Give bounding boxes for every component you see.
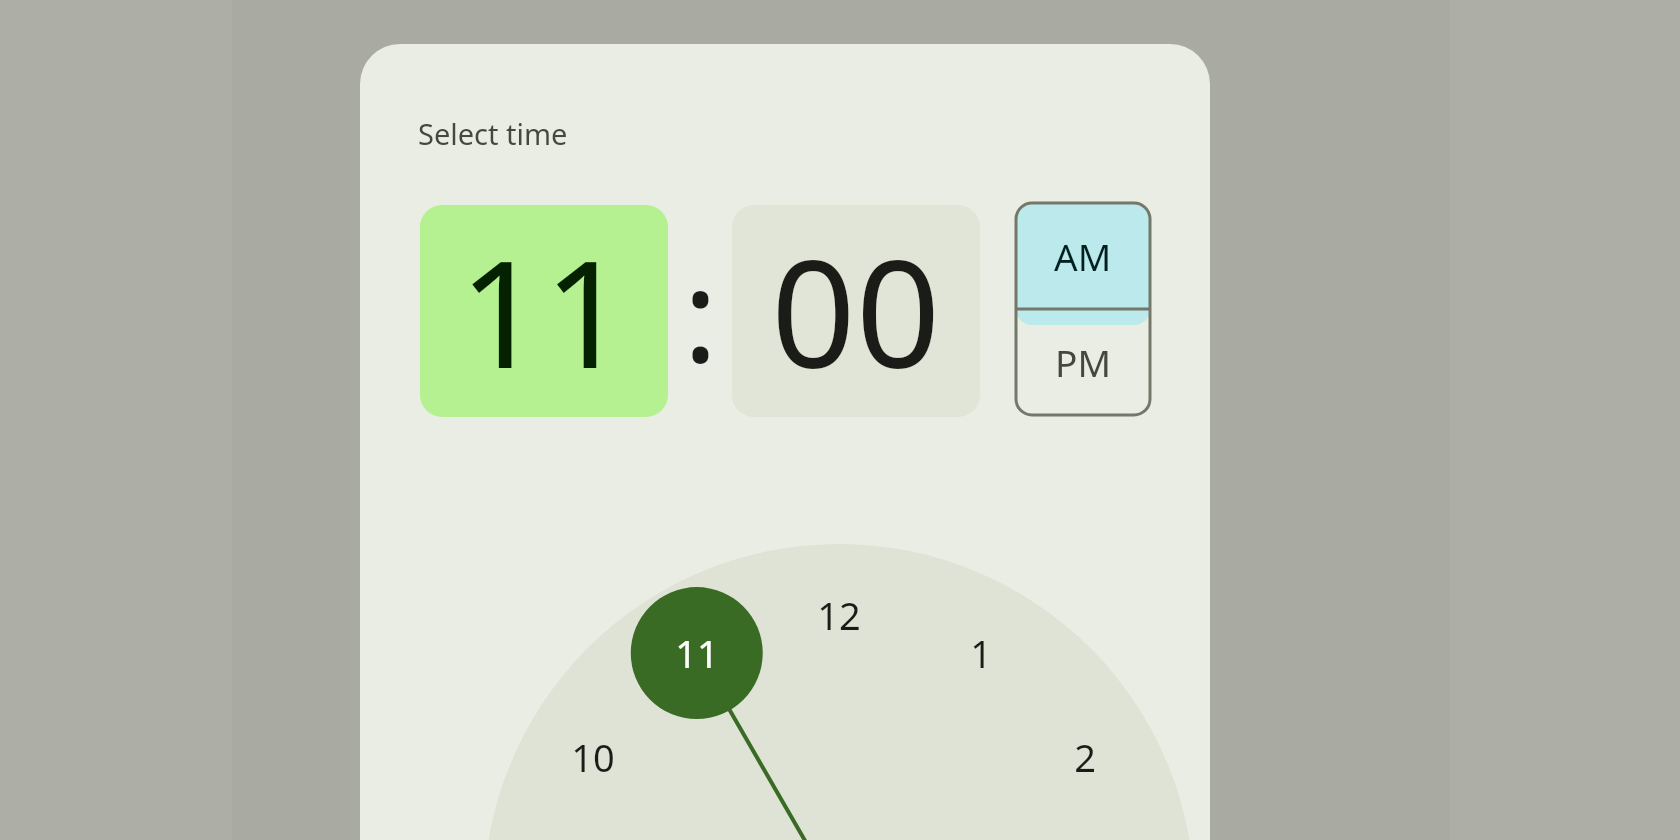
button[interactable]: 12 <box>804 587 874 643</box>
staticText: 1 <box>970 627 992 679</box>
button[interactable]: 2 <box>1050 729 1120 785</box>
staticText: 2 <box>1074 731 1096 783</box>
button[interactable]: 00 <box>732 205 980 417</box>
button[interactable]: PM <box>1016 309 1150 415</box>
staticText: 11 <box>459 210 629 412</box>
staticText: 10 <box>571 731 615 783</box>
staticText: AM <box>1054 231 1112 281</box>
button[interactable]: 11 <box>662 625 732 681</box>
staticText: 00 <box>771 210 941 412</box>
button[interactable]: 1 <box>946 625 1016 681</box>
staticText: : <box>683 223 718 400</box>
staticText: 12 <box>817 589 861 641</box>
button[interactable]: AM <box>1016 203 1150 309</box>
staticText: 11 <box>675 627 719 679</box>
staticText: Select time <box>418 114 568 153</box>
button[interactable]: 10 <box>558 729 628 785</box>
staticText: PM <box>1055 337 1111 387</box>
button[interactable]: 11 <box>420 205 668 417</box>
